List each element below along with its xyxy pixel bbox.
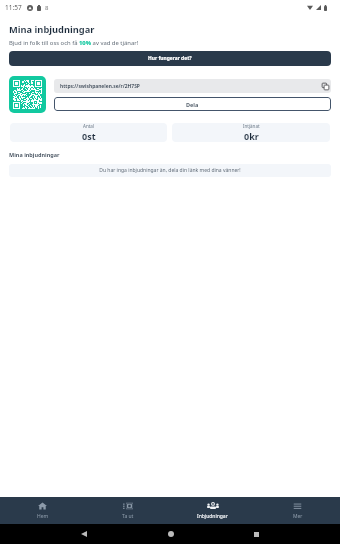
- staticText: Mina inbjudningar: [9, 151, 60, 158]
- staticText: Du har inga inbjudningar än, dela din lä…: [99, 167, 241, 174]
- staticText: Bjud in folk till oss och få 10% av vad …: [9, 39, 139, 47]
- staticText: Ta ut: [122, 513, 134, 520]
- button[interactable]: Intjänat: [172, 123, 330, 142]
- button[interactable]: Inbjudningar: [170, 502, 255, 520]
- button[interactable]: Antal: [10, 123, 167, 142]
- staticText: 11:57: [5, 3, 22, 12]
- staticText: 0kr: [244, 130, 259, 142]
- staticText: Mina inbjudningar: [9, 23, 95, 36]
- button[interactable]: Hur fungerar det?: [9, 51, 331, 66]
- staticText: Inbjudningar: [197, 513, 228, 520]
- button[interactable]: Dela: [54, 97, 331, 111]
- staticText: Intjänat: [243, 123, 260, 129]
- staticText: 8: [45, 4, 49, 12]
- other: Home: [168, 531, 174, 537]
- button[interactable]: Hem: [0, 502, 85, 520]
- button[interactable]: Mer: [255, 502, 340, 520]
- staticText: 0st: [82, 130, 96, 142]
- staticText: Mer: [293, 513, 303, 520]
- other: Kopiera länk: [322, 83, 329, 90]
- staticText: https://swishpanelen.se/r/2H7SP: [60, 83, 140, 90]
- staticText: Hem: [37, 513, 49, 520]
- staticText: Dela: [186, 101, 199, 108]
- staticText: Antal: [83, 123, 94, 129]
- other: Back: [81, 531, 87, 537]
- button[interactable]: https://swishpanelen.se/r/2H7SP: [54, 79, 331, 93]
- button[interactable]: Ta ut: [85, 502, 170, 520]
- staticText: Hur fungerar det?: [148, 55, 192, 62]
